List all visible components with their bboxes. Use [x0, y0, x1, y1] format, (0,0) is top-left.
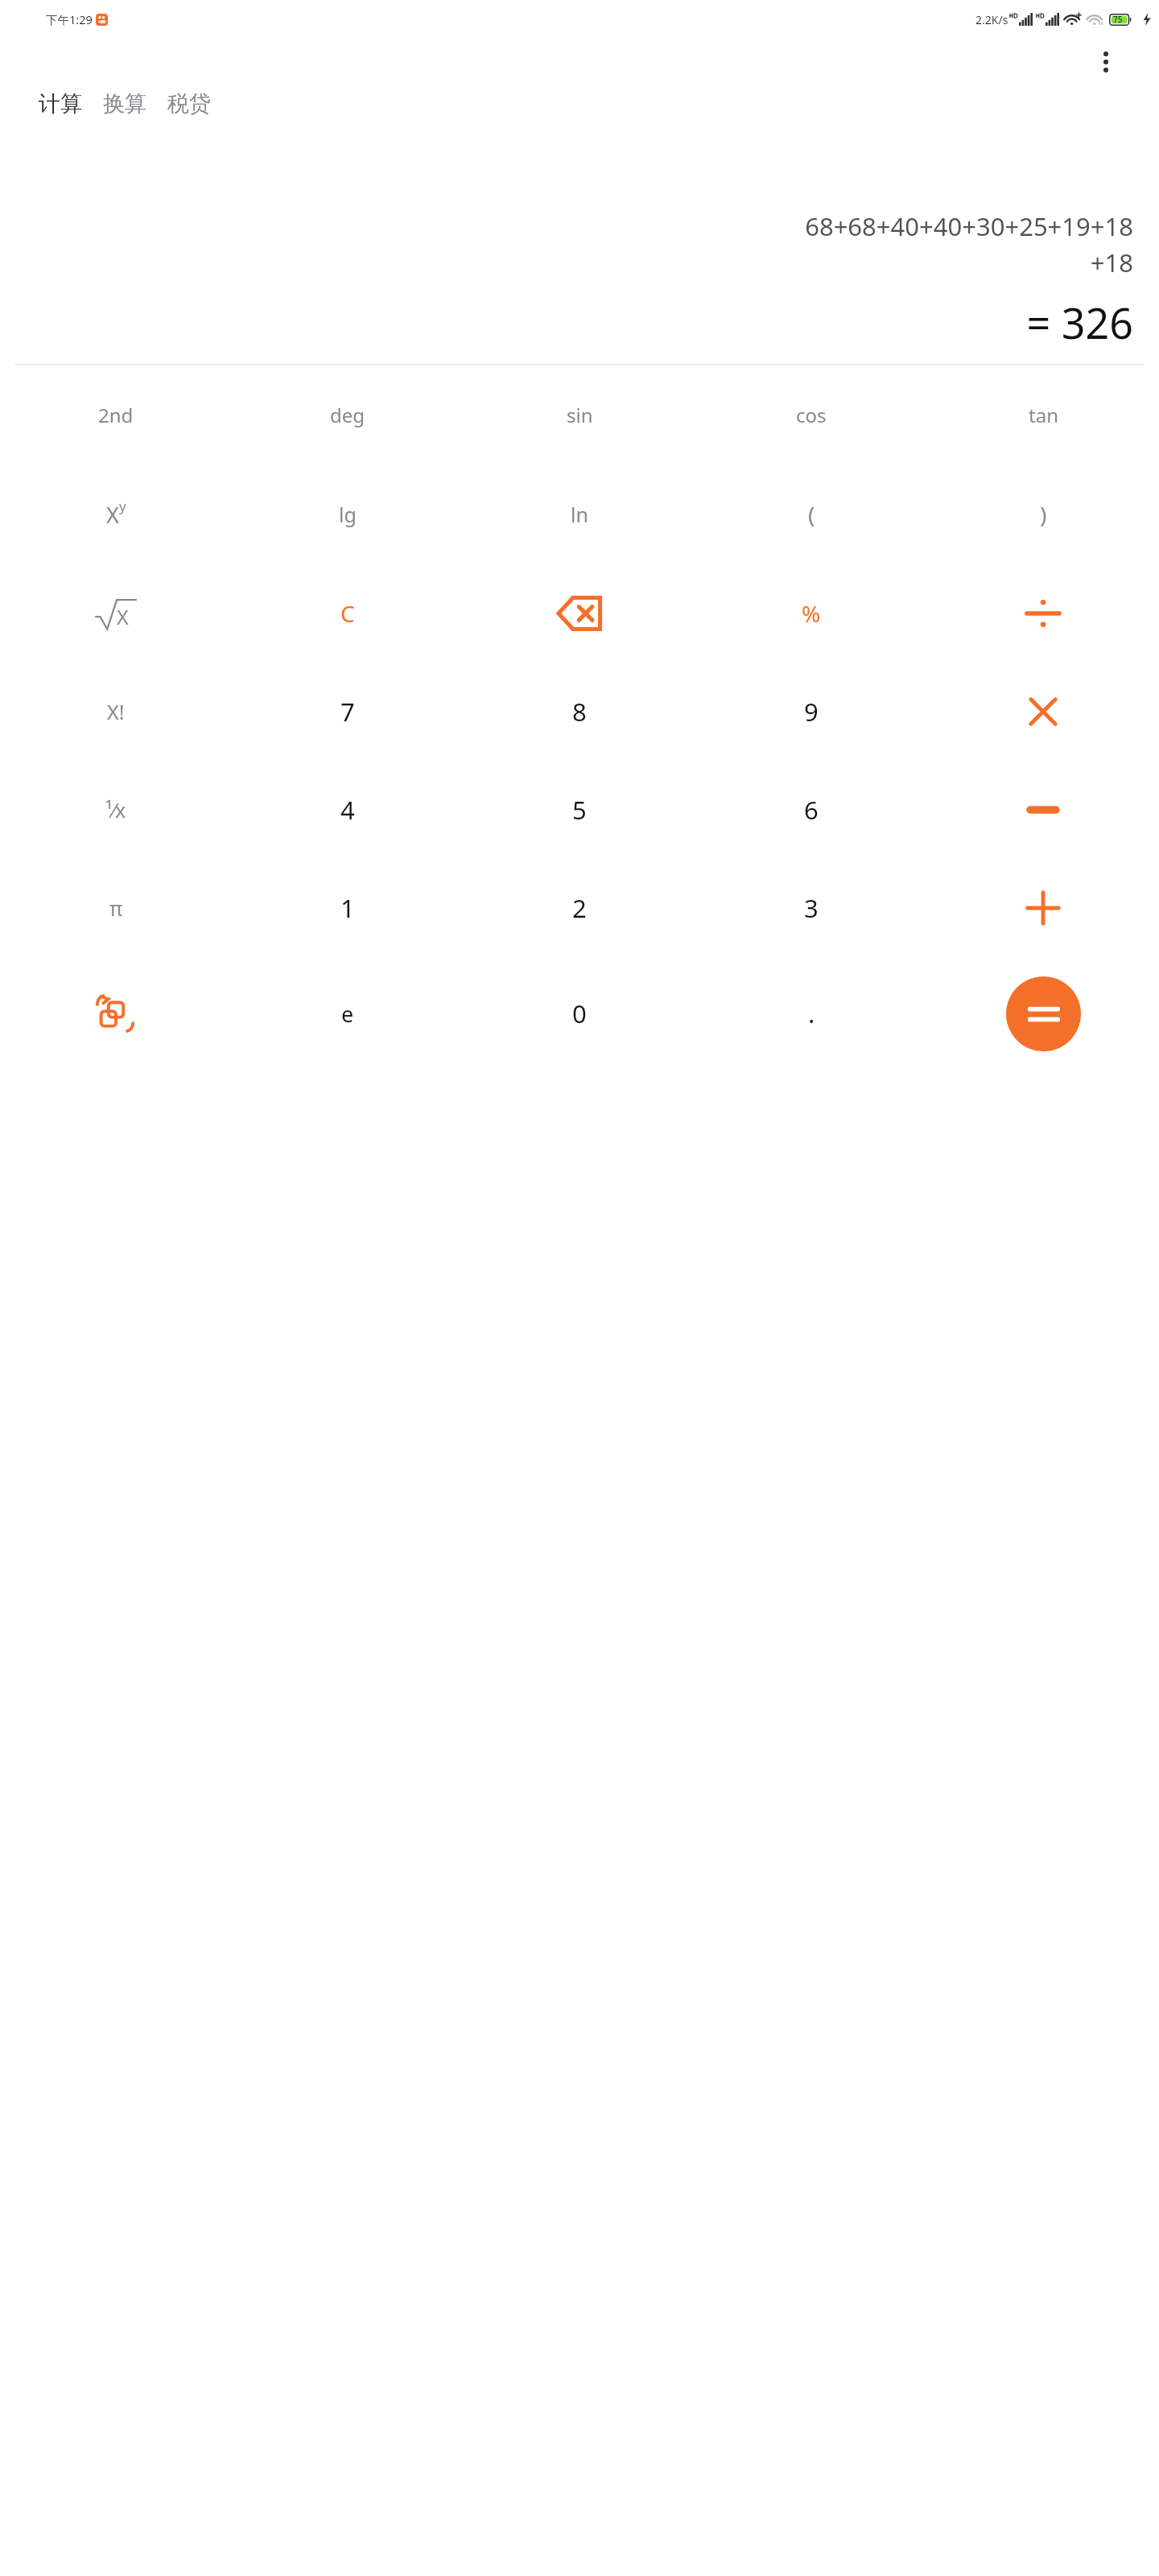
staticText: cos — [796, 402, 827, 428]
button[interactable]: More options — [1087, 43, 1125, 81]
staticText: 2nd — [98, 402, 134, 428]
staticText: ) — [1040, 499, 1047, 530]
staticText: 下午1:29 — [46, 11, 93, 27]
button[interactable]: Minus — [927, 761, 1159, 859]
staticText: 6 — [804, 793, 819, 827]
button[interactable]: ( — [695, 464, 927, 564]
staticText: π — [109, 894, 123, 922]
button[interactable]: 换算 — [100, 85, 150, 122]
button[interactable]: C — [232, 564, 464, 663]
staticText: 68+68+40+40+30+25+19+18 +18 — [26, 209, 1133, 279]
staticText: = 326 — [26, 294, 1133, 351]
button[interactable]: 税贷 — [164, 85, 214, 122]
button[interactable]: 计算 — [35, 85, 85, 122]
button[interactable]: ) — [927, 464, 1159, 564]
button[interactable]: X! — [0, 663, 232, 761]
button[interactable]: Square root — [0, 564, 232, 663]
button[interactable]: ln — [464, 464, 695, 564]
button[interactable]: 9 — [695, 663, 927, 761]
button[interactable]: sin — [464, 365, 695, 464]
staticText: 税贷 — [167, 90, 211, 118]
button[interactable]: Divide — [927, 564, 1159, 663]
button[interactable]: X — [0, 464, 232, 564]
button[interactable]: 0 — [464, 957, 695, 1070]
staticText: y — [119, 497, 126, 515]
staticText: . — [808, 997, 815, 1030]
staticText: ( — [808, 499, 815, 530]
button[interactable]: % — [695, 564, 927, 663]
button[interactable]: 7 — [232, 663, 464, 761]
button[interactable]: 5 — [464, 761, 695, 859]
staticText: 75 — [1113, 14, 1123, 25]
staticText: 5 — [572, 793, 587, 827]
staticText: 4 — [340, 793, 355, 827]
button[interactable]: tan — [927, 365, 1159, 464]
staticText: 7 — [340, 695, 355, 729]
staticText: X! — [107, 698, 125, 725]
button[interactable]: Switch layout — [0, 957, 232, 1070]
staticText: 0 — [572, 997, 587, 1030]
button[interactable]: π — [0, 859, 232, 957]
button[interactable]: 1 — [232, 859, 464, 957]
staticText: % — [802, 598, 821, 629]
staticText: C — [340, 598, 355, 629]
button[interactable]: 6 — [695, 761, 927, 859]
staticText: lg — [339, 501, 357, 528]
staticText: 2 — [572, 891, 587, 925]
button[interactable]: 8 — [464, 663, 695, 761]
button[interactable]: Multiply — [927, 663, 1159, 761]
staticText: deg — [330, 402, 365, 428]
staticText: tan — [1029, 402, 1058, 428]
button[interactable]: e — [232, 957, 464, 1070]
staticText: e — [341, 999, 354, 1029]
staticText: 3 — [804, 891, 819, 925]
button[interactable]: 2nd — [0, 365, 232, 464]
button[interactable]: 3 — [695, 859, 927, 957]
button[interactable]: 4 — [232, 761, 464, 859]
staticText: sin — [567, 402, 593, 428]
staticText: X — [117, 603, 129, 630]
button[interactable]: Plus — [927, 859, 1159, 957]
button[interactable]: 2 — [464, 859, 695, 957]
button[interactable]: deg — [232, 365, 464, 464]
staticText: 计算 — [39, 90, 82, 118]
staticText: ¹⁄x — [105, 796, 126, 824]
staticText: 1 — [340, 891, 355, 925]
button[interactable]: lg — [232, 464, 464, 564]
button[interactable]: Backspace — [464, 564, 695, 663]
staticText: 9 — [804, 695, 819, 729]
staticText: ln — [571, 501, 588, 528]
button[interactable]: ¹⁄x — [0, 761, 232, 859]
staticText: 8 — [572, 695, 587, 729]
button[interactable]: cos — [695, 365, 927, 464]
staticText: 2.2K/s — [975, 12, 1008, 27]
button[interactable]: . — [695, 957, 927, 1070]
staticText: X — [106, 500, 119, 530]
staticText: 换算 — [103, 90, 146, 118]
button[interactable]: Equals — [1006, 976, 1081, 1051]
